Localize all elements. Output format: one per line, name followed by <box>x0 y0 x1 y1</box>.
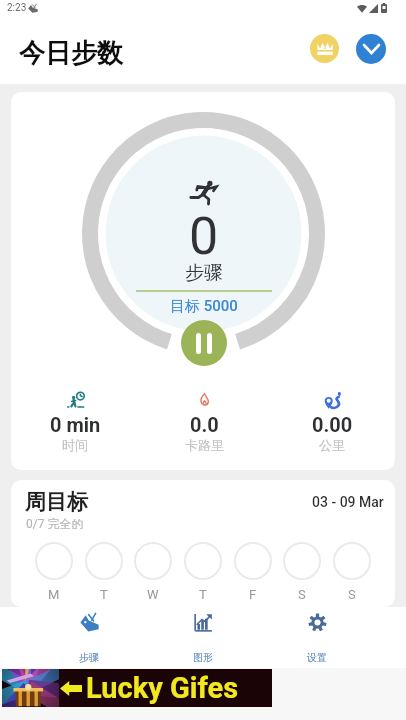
button[interactable]: Lucky Gifes <box>2 669 272 707</box>
staticText: 03 - 09 Mar <box>312 494 384 510</box>
staticText: F <box>249 587 257 602</box>
staticText: 设置 <box>307 651 327 664</box>
button[interactable]: Pause <box>181 320 227 366</box>
staticText: 0/7 完全的 <box>26 516 84 531</box>
staticText: W <box>147 587 159 602</box>
staticText: S <box>298 587 306 602</box>
staticText: 0 <box>189 206 219 267</box>
staticText: 图形 <box>193 651 213 664</box>
staticText: 0 min <box>50 413 101 436</box>
staticText: 步骤 <box>79 651 99 664</box>
staticText: 周目标 <box>25 489 88 515</box>
staticText: 今日步数 <box>19 37 123 70</box>
staticText: S <box>348 587 356 602</box>
button[interactable]: Expand <box>356 34 386 64</box>
staticText: 目标 5000 <box>170 297 238 316</box>
staticText: Lucky Gifes <box>86 671 239 705</box>
staticText: 步骤 <box>185 261 223 285</box>
staticText: 卡路里 <box>185 437 224 453</box>
staticText: T <box>100 587 108 602</box>
staticText: 0.0 <box>190 413 219 436</box>
button[interactable]: Premium <box>310 34 339 63</box>
button[interactable]: 步骤 <box>32 607 146 668</box>
staticText: T <box>199 587 207 602</box>
staticText: 2:23 <box>7 2 27 14</box>
staticText: M <box>48 587 60 602</box>
staticText: 公里 <box>319 437 345 453</box>
button[interactable]: 图形 <box>146 607 260 668</box>
button[interactable]: 设置 <box>260 607 374 668</box>
staticText: 0.00 <box>312 413 353 436</box>
staticText: 时间 <box>62 437 88 453</box>
